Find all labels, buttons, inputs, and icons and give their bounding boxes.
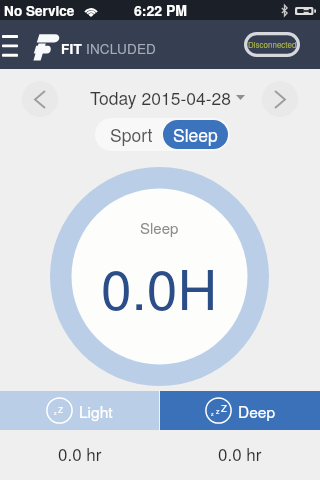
staticText: z — [211, 410, 214, 417]
button[interactable]: z — [160, 391, 320, 430]
button[interactable]: Next day — [262, 81, 298, 117]
staticText: Disconnected — [248, 39, 297, 50]
button[interactable]: Sleep — [163, 120, 228, 149]
staticText: Z — [58, 404, 63, 415]
staticText: Sport — [110, 122, 153, 147]
staticText: Today 2015-04-28 — [90, 85, 231, 110]
button[interactable]: Disconnected — [244, 32, 300, 57]
staticText: z — [216, 406, 220, 416]
staticText: Deep — [238, 400, 276, 422]
staticText: 0.0 hr — [58, 441, 102, 463]
staticText: FIT — [61, 39, 82, 58]
staticText: Sleep — [140, 217, 179, 238]
staticText: z — [54, 409, 57, 416]
staticText: Sleep — [173, 122, 218, 147]
staticText: 0.0H — [101, 247, 218, 326]
staticText: 6:22 PM — [134, 0, 187, 20]
staticText: Z — [221, 401, 227, 415]
staticText: Light — [79, 400, 113, 422]
staticText: No Service — [4, 1, 75, 20]
button[interactable]: z — [0, 391, 159, 430]
staticText: 0.0 hr — [218, 441, 262, 463]
staticText: INCLUDED — [86, 39, 157, 58]
button[interactable]: Previous day — [22, 81, 58, 117]
button[interactable]: Sport — [95, 118, 161, 151]
button[interactable]: Menu — [1, 32, 19, 58]
